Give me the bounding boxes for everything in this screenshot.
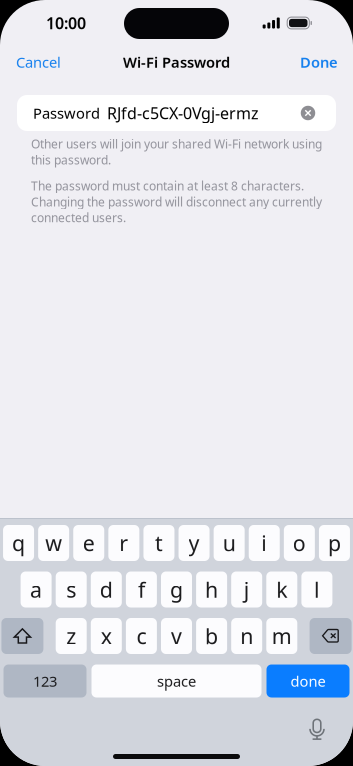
staticText: v: [171, 622, 182, 650]
staticText: Cancel: [16, 52, 61, 72]
button[interactable]: n: [231, 618, 262, 654]
button[interactable]: w: [38, 525, 69, 561]
button[interactable]: v: [161, 618, 192, 654]
staticText: t: [155, 529, 163, 557]
button[interactable]: 123: [3, 664, 86, 697]
button[interactable]: Delete: [310, 618, 352, 654]
staticText: a: [30, 575, 42, 604]
button[interactable]: z: [56, 618, 87, 654]
button[interactable]: e: [73, 525, 104, 561]
staticText: Other users will join your shared Wi-Fi …: [31, 136, 322, 168]
button[interactable]: c: [126, 618, 157, 654]
button[interactable]: x: [91, 618, 122, 654]
staticText: e: [83, 529, 95, 557]
button[interactable]: j: [231, 571, 262, 607]
staticText: f: [138, 575, 145, 604]
button[interactable]: a: [21, 571, 52, 607]
button[interactable]: y: [179, 525, 210, 561]
button[interactable]: t: [143, 525, 174, 561]
button[interactable]: Clear text: [297, 95, 336, 131]
staticText: l: [314, 575, 320, 604]
staticText: x: [101, 622, 112, 650]
staticText: The password must contain at least 8 cha…: [31, 178, 322, 226]
staticText: done: [290, 671, 325, 691]
button[interactable]: u: [214, 525, 245, 561]
staticText: g: [170, 575, 183, 604]
staticText: q: [12, 529, 25, 557]
button[interactable]: done: [266, 664, 349, 697]
staticText: Wi-Fi Password: [123, 52, 230, 72]
button[interactable]: d: [91, 571, 122, 607]
staticText: z: [66, 622, 76, 650]
button[interactable]: space: [91, 664, 261, 697]
staticText: o: [293, 529, 306, 557]
button[interactable]: Done: [285, 44, 353, 80]
button[interactable]: q: [3, 525, 34, 561]
staticText: j: [244, 575, 250, 604]
button[interactable]: g: [161, 571, 192, 607]
button[interactable]: i: [249, 525, 280, 561]
staticText: RJfd-c5CX-0Vgj-ermz: [107, 102, 259, 124]
button[interactable]: Cancel: [0, 44, 77, 80]
button[interactable]: Shift: [1, 618, 43, 654]
staticText: Password: [33, 103, 100, 123]
staticText: 123: [33, 671, 57, 691]
staticText: s: [66, 575, 76, 604]
button[interactable]: b: [196, 618, 227, 654]
staticText: b: [205, 622, 218, 650]
staticText: w: [45, 529, 62, 557]
button[interactable]: h: [196, 571, 227, 607]
staticText: c: [136, 622, 146, 650]
button[interactable]: m: [266, 618, 297, 654]
staticText: h: [205, 575, 218, 604]
staticText: i: [261, 529, 267, 557]
staticText: Done: [300, 52, 338, 72]
staticText: d: [100, 575, 113, 604]
button[interactable]: f: [126, 571, 157, 607]
staticText: k: [276, 575, 287, 604]
staticText: u: [223, 529, 236, 557]
staticText: n: [240, 622, 253, 650]
staticText: 10:00: [46, 12, 86, 34]
staticText: r: [119, 529, 128, 557]
button[interactable]: l: [301, 571, 332, 607]
button[interactable]: k: [266, 571, 297, 607]
button[interactable]: Dictation: [299, 714, 335, 746]
staticText: space: [157, 671, 196, 691]
button[interactable]: p: [319, 525, 350, 561]
button[interactable]: s: [56, 571, 87, 607]
button[interactable]: r: [108, 525, 139, 561]
staticText: y: [189, 529, 200, 557]
staticText: m: [272, 622, 292, 650]
staticText: p: [328, 529, 341, 557]
button[interactable]: o: [284, 525, 315, 561]
